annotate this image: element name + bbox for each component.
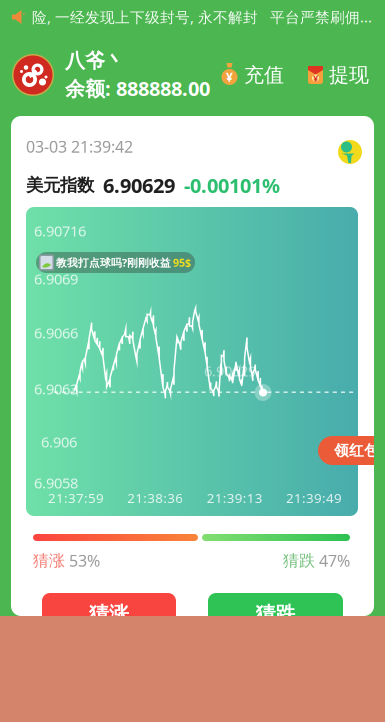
staticText: 95$ <box>173 255 191 270</box>
button[interactable]: 领红包 <box>318 436 385 465</box>
staticText: 猜涨 <box>33 551 65 570</box>
button[interactable]: 猜跌 <box>208 593 343 635</box>
staticText: ¥ <box>226 69 233 85</box>
staticText: 险, 一经发现上下级封号, 永不解封 平台严禁刷佣金, 一经 <box>32 7 378 27</box>
button[interactable]: ¥ <box>221 63 284 87</box>
staticText: 6.90716 <box>34 221 86 240</box>
staticText: 猜涨 <box>89 602 129 626</box>
button[interactable]: ¥ <box>308 63 369 87</box>
staticText: 53% <box>65 550 100 571</box>
staticText: 教我打点球吗?刚刚收益 <box>56 255 171 270</box>
staticText: 47% <box>315 550 350 571</box>
staticText: 6.90629 <box>103 172 175 199</box>
staticText: 6.90629 <box>204 361 256 380</box>
staticText: 八爷丶 <box>65 48 125 73</box>
button[interactable]: 猜涨 <box>42 593 176 635</box>
staticText: 6.906 <box>41 432 77 451</box>
staticText: ¥ <box>313 72 318 84</box>
staticText: 21:38:36 <box>127 489 183 507</box>
staticText: 猜跌 <box>283 551 315 570</box>
staticText: 美元指数 <box>26 175 94 196</box>
staticText: 6.9058 <box>34 473 78 492</box>
staticText: 6.9066 <box>34 323 78 342</box>
staticText: 03-03 21:39:42 <box>26 136 133 157</box>
staticText: 充值 <box>244 63 284 87</box>
staticText: 余额: 888888.00 <box>65 75 210 102</box>
staticText: 提现 <box>329 63 369 87</box>
staticText: 21:39:13 <box>207 489 263 507</box>
staticText: 21:39:49 <box>286 489 342 507</box>
staticText: 6.9069 <box>34 269 78 288</box>
staticText: 21:37:59 <box>48 489 104 507</box>
staticText: 猜跌 <box>255 602 295 626</box>
staticText: 领红包 <box>334 441 379 459</box>
staticText: 6.9063 <box>34 379 78 398</box>
staticText: -0.00101% <box>184 172 280 199</box>
